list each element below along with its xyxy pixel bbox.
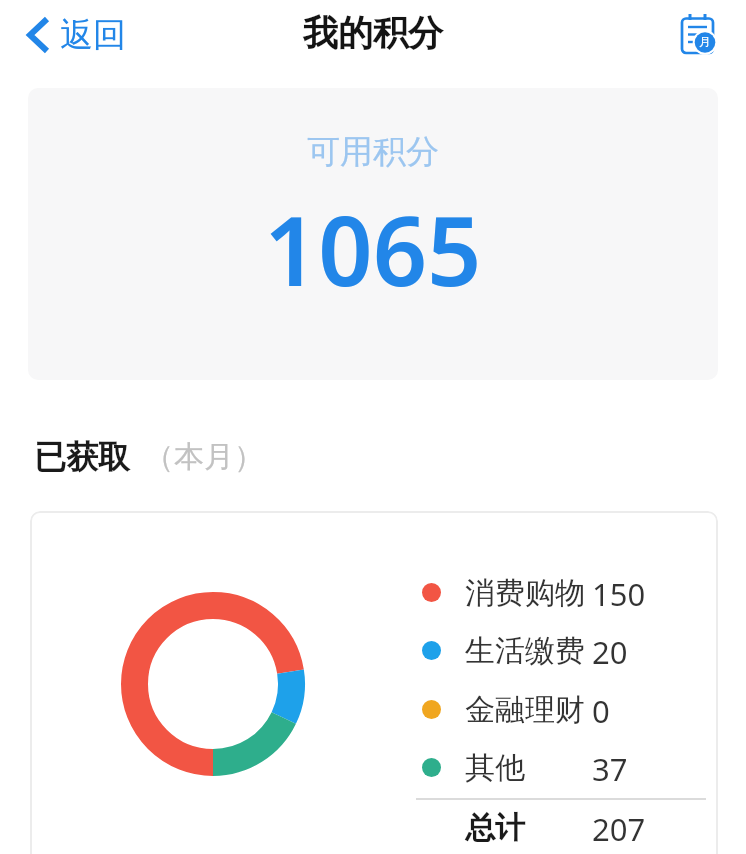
staticText: 150 xyxy=(592,573,646,613)
staticText: 总计 xyxy=(465,809,525,847)
staticText: 0 xyxy=(592,690,610,730)
staticText: 已获取 xyxy=(34,437,130,477)
staticText: 消费购物 xyxy=(465,574,585,612)
staticText: 37 xyxy=(592,748,628,788)
staticText: 1065 xyxy=(264,184,482,304)
staticText: 返回 xyxy=(60,14,126,56)
staticText: 月 xyxy=(699,34,711,49)
staticText: 生活缴费 xyxy=(465,632,585,670)
staticText: 207 xyxy=(592,808,646,848)
staticText: 其他 xyxy=(465,749,525,787)
staticText: 可用积分 xyxy=(307,131,439,173)
staticText: （本月） xyxy=(144,438,264,476)
staticText: 20 xyxy=(592,631,628,671)
staticText: 我的积分 xyxy=(303,11,443,55)
button[interactable]: 返回 xyxy=(20,10,134,60)
staticText: 金融理财 xyxy=(465,691,585,729)
button[interactable]: 月 xyxy=(676,8,728,60)
